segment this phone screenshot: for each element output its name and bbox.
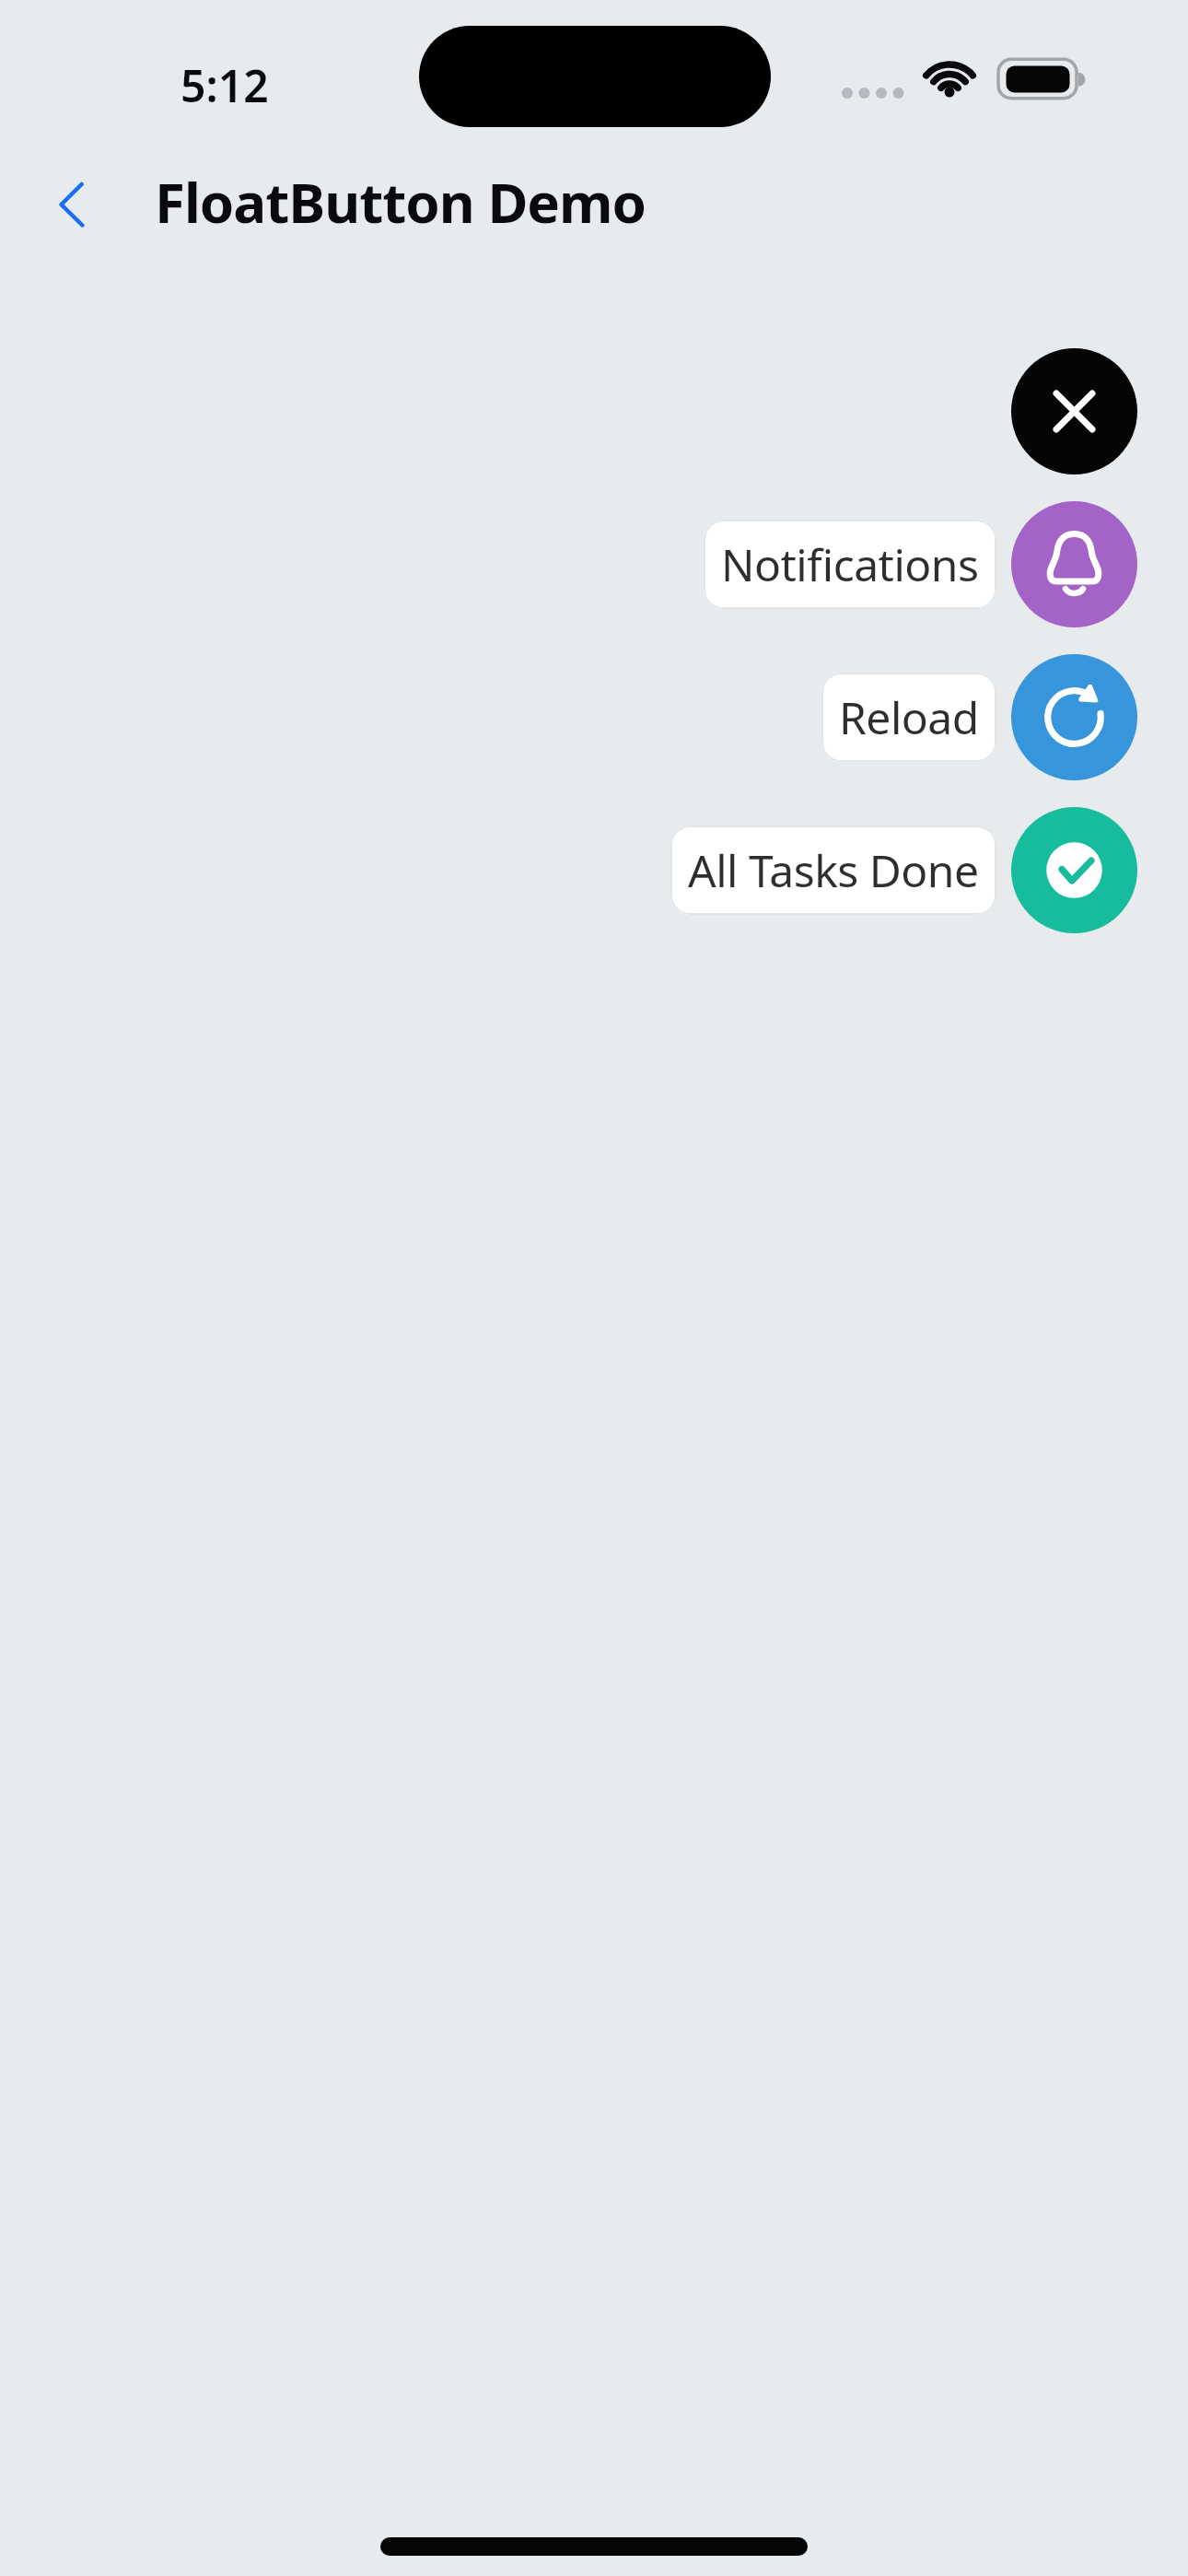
staticText: Reload	[839, 687, 979, 747]
button[interactable]	[1011, 348, 1137, 474]
staticText: 5:12	[181, 55, 269, 115]
staticText: FloatButton Demo	[155, 164, 646, 240]
button[interactable]: All Tasks Done	[670, 825, 996, 915]
button[interactable]: Reload	[821, 673, 996, 762]
button[interactable]	[1011, 501, 1137, 627]
staticText: Notifications	[721, 534, 979, 594]
button[interactable]	[1011, 807, 1137, 933]
button[interactable]	[1011, 654, 1137, 780]
staticText: All Tasks Done	[688, 840, 979, 900]
button[interactable]: Notifications	[704, 520, 996, 609]
button[interactable]	[37, 166, 111, 243]
